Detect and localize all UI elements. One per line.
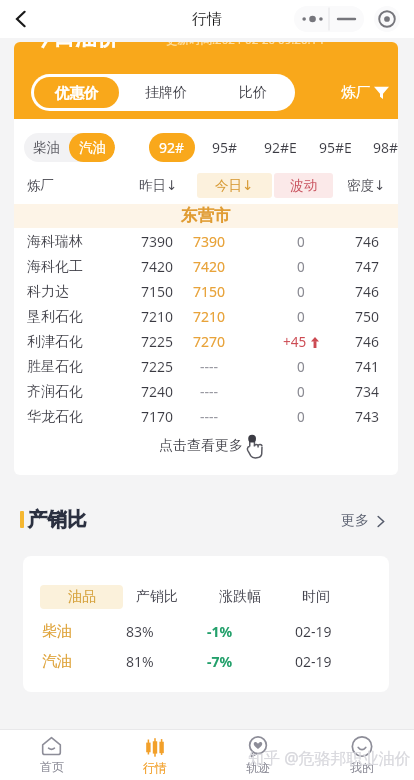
staticText: 密度↓ — [347, 177, 386, 194]
button[interactable]: 波动 — [274, 173, 333, 198]
staticText: 汽油 — [79, 139, 106, 156]
button[interactable]: 垦利石化 — [14, 304, 398, 329]
staticText: 746 — [355, 282, 380, 301]
staticText: 7420 — [193, 257, 226, 276]
staticText: 741 — [355, 357, 380, 376]
button[interactable]: 海科化工 — [14, 254, 398, 279]
staticText: 油品 — [68, 588, 96, 606]
button[interactable]: 汽油 — [23, 648, 389, 674]
staticText: 81% — [126, 652, 154, 671]
staticText: 东营市 — [181, 205, 231, 226]
button[interactable]: Close — [374, 6, 400, 32]
staticText: 0 — [297, 383, 305, 401]
staticText: 0 — [297, 408, 305, 426]
staticText: 华龙石化 — [27, 408, 83, 426]
staticText: 行情 — [192, 10, 222, 29]
staticText: 产销比 — [136, 588, 178, 606]
staticText: 7225 — [141, 332, 174, 351]
staticText: ---- — [200, 357, 219, 376]
staticText: 02-19 — [295, 652, 332, 671]
staticText: 734 — [355, 382, 380, 401]
staticText: 743 — [355, 407, 380, 426]
staticText: 02-19 — [295, 622, 332, 641]
staticText: 时间 — [302, 588, 330, 606]
button[interactable]: 华龙石化 — [14, 404, 398, 429]
button[interactable]: 98# — [360, 133, 398, 162]
button[interactable]: 海科瑞林 — [14, 229, 398, 254]
button[interactable]: 昨日↓ — [123, 173, 193, 198]
staticText: 海科瑞林 — [27, 233, 83, 251]
button[interactable]: 胜星石化 — [14, 354, 398, 379]
staticText: 胜星石化 — [27, 358, 83, 376]
button[interactable]: Back — [5, 3, 37, 35]
staticText: 98# — [373, 138, 398, 157]
staticText: 波动 — [290, 177, 317, 194]
staticText: 比价 — [239, 84, 267, 102]
staticText: 83% — [126, 622, 154, 641]
button[interactable]: More options — [294, 6, 364, 32]
staticText: 首页 — [40, 759, 64, 774]
staticText: -1% — [207, 622, 233, 641]
staticText: 炼厂 — [341, 83, 370, 101]
staticText: 更新时间:2024-02-20 09:20:14 — [166, 42, 324, 48]
staticText: 7390 — [193, 232, 226, 251]
button[interactable]: 轨迹 — [206, 730, 310, 780]
staticText: 747 — [355, 257, 380, 276]
staticText: 7150 — [141, 282, 174, 301]
button[interactable]: 今日↓ — [197, 173, 272, 198]
button[interactable]: 我的 — [310, 730, 414, 780]
button[interactable]: 挂牌价 — [122, 74, 210, 111]
staticText: 齐润石化 — [27, 383, 83, 401]
button[interactable]: 科力达 — [14, 279, 398, 304]
staticText: 7240 — [141, 382, 174, 401]
staticText: 垦利石化 — [27, 308, 83, 326]
staticText: 746 — [355, 332, 380, 351]
staticText: 7420 — [141, 257, 174, 276]
staticText: +45 — [283, 333, 307, 351]
staticText: 科力达 — [27, 283, 69, 301]
button[interactable]: 首页 — [0, 730, 103, 780]
staticText: 7270 — [193, 332, 226, 351]
staticText: ---- — [200, 407, 219, 426]
button[interactable]: 92#E — [254, 133, 306, 162]
staticText: 0 — [297, 308, 305, 326]
button[interactable]: 95#E — [309, 133, 361, 162]
button[interactable]: 更多 — [341, 512, 387, 530]
staticText: 行情 — [143, 760, 167, 775]
staticText: 0 — [297, 233, 305, 251]
staticText: 炼厂 — [27, 177, 54, 194]
staticText: 挂牌价 — [145, 84, 187, 102]
button[interactable]: 点击查看更多 — [14, 429, 398, 475]
button[interactable]: 92# — [149, 133, 195, 162]
staticText: 海科化工 — [27, 258, 83, 276]
staticText: 7225 — [141, 357, 174, 376]
button[interactable]: 利津石化 — [14, 329, 398, 354]
staticText: 轨迹 — [246, 760, 270, 775]
staticText: 涨跌幅 — [219, 588, 261, 606]
staticText: 产销比 — [28, 507, 87, 532]
staticText: 750 — [355, 307, 380, 326]
staticText: 0 — [297, 358, 305, 376]
button[interactable]: 汽油 — [69, 133, 115, 162]
staticText: 95#E — [319, 138, 352, 157]
staticText: 利津石化 — [27, 333, 83, 351]
button[interactable]: 柴油 — [23, 618, 389, 644]
button[interactable]: 炼厂 — [341, 83, 389, 101]
button[interactable]: 齐润石化 — [14, 379, 398, 404]
button[interactable]: 行情 — [103, 730, 206, 780]
staticText: 7170 — [141, 407, 174, 426]
staticText: 0 — [297, 283, 305, 301]
staticText: 点击查看更多 — [159, 437, 243, 455]
staticText: 92#E — [264, 138, 297, 157]
staticText: ---- — [200, 382, 219, 401]
staticText: 知乎 @危骆邦职业油价 — [248, 747, 411, 769]
staticText: 0 — [297, 258, 305, 276]
staticText: 柴油 — [33, 139, 60, 156]
button[interactable]: 柴油 — [24, 133, 69, 162]
button[interactable]: 密度↓ — [331, 173, 398, 198]
button[interactable]: 比价 — [210, 74, 295, 111]
button[interactable]: 优惠价 — [34, 77, 119, 108]
button[interactable]: 95# — [199, 133, 251, 162]
staticText: 昨日↓ — [139, 177, 178, 194]
staticText: 7150 — [193, 282, 226, 301]
